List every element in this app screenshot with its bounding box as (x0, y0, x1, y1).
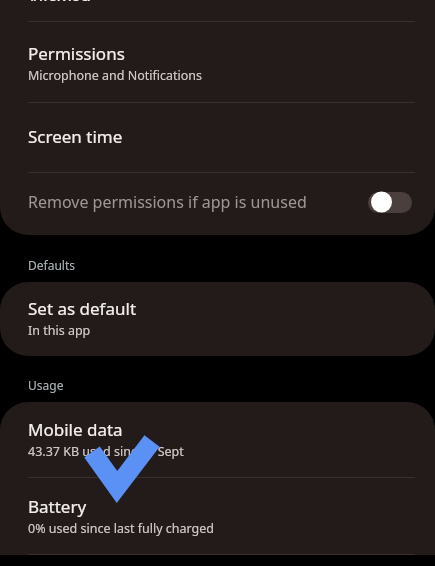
staticText: Screen time (28, 125, 123, 148)
staticText: Remove permissions if app is unused (28, 191, 307, 213)
staticText: Permissions (28, 42, 125, 65)
staticText: In this app (28, 322, 91, 339)
staticText: Allowed (28, 0, 91, 1)
staticText: Battery (28, 495, 87, 518)
button[interactable]: Remove permissions if app is unused (0, 173, 435, 235)
staticText: Microphone and Notifications (28, 67, 203, 84)
staticText: Defaults (28, 257, 75, 273)
button[interactable]: Remove permissions if app is unused togg… (367, 187, 413, 217)
staticText: Set as default (28, 297, 137, 320)
staticText: 43.37 KB used since 1 Sept (28, 443, 184, 460)
staticText: 0% used since last fully charged (28, 520, 215, 537)
button[interactable]: Permissions (0, 22, 435, 102)
button[interactable]: Allowed (0, 0, 435, 10)
button[interactable]: Mobile data (0, 402, 435, 477)
button[interactable]: Screen time (0, 103, 435, 172)
button[interactable]: Battery (0, 478, 435, 554)
staticText: Usage (28, 377, 64, 393)
staticText: Mobile data (28, 418, 123, 441)
button[interactable]: Set as default (0, 282, 435, 356)
